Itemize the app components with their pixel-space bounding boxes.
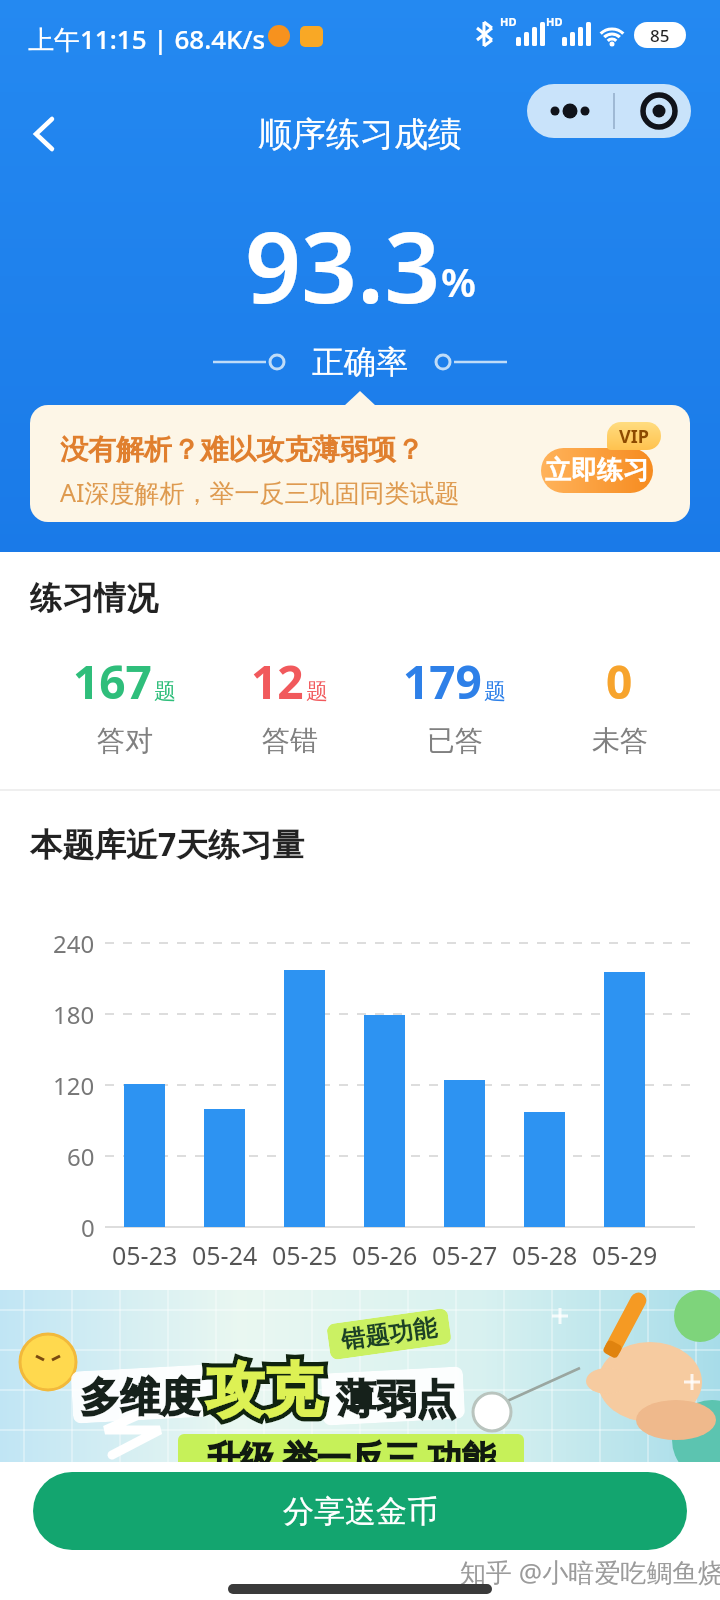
staticText: 85 bbox=[650, 24, 670, 47]
staticText: 攻克 bbox=[206, 1354, 322, 1427]
staticText: 本题库近7天练习量 bbox=[30, 822, 305, 866]
staticText: 05-24 bbox=[192, 1238, 258, 1268]
staticText: 0 bbox=[81, 1211, 95, 1243]
staticText: 未答 bbox=[592, 723, 648, 758]
button[interactable] bbox=[527, 84, 691, 138]
staticText: 已答 bbox=[427, 723, 483, 758]
staticText: 知乎 @小暗爱吃鲷鱼烧 bbox=[460, 1554, 720, 1590]
staticText: 立即练习 bbox=[545, 454, 649, 487]
staticText: 12 bbox=[251, 650, 304, 713]
button[interactable]: 分享送金币 bbox=[33, 1472, 687, 1550]
staticText: 180 bbox=[53, 998, 95, 1030]
staticText: 179 bbox=[403, 650, 482, 713]
staticText: HD bbox=[500, 14, 517, 29]
staticText: 正确率 bbox=[312, 342, 408, 382]
staticText: 05-26 bbox=[352, 1238, 418, 1268]
staticText: 顺序练习成绩 bbox=[258, 113, 462, 156]
staticText: 题 bbox=[484, 678, 506, 706]
staticText: 240 bbox=[53, 927, 95, 959]
staticText: 05-28 bbox=[512, 1238, 578, 1268]
staticText: 05-29 bbox=[592, 1238, 658, 1268]
button[interactable]: 立即练习 bbox=[541, 448, 653, 493]
staticText: 120 bbox=[53, 1069, 95, 1101]
staticText: 05-23 bbox=[112, 1238, 178, 1268]
staticText: % bbox=[441, 254, 476, 308]
staticText: VIP bbox=[619, 424, 649, 449]
staticText: 答对 bbox=[97, 723, 153, 758]
button[interactable] bbox=[18, 108, 70, 160]
staticText: HD bbox=[546, 14, 563, 29]
staticText: 167 bbox=[73, 650, 152, 713]
staticText: 没有解析？难以攻克薄弱项？ bbox=[60, 432, 424, 467]
staticText: 60 bbox=[67, 1140, 95, 1172]
staticText: 多维度 bbox=[80, 1372, 200, 1422]
staticText: 0 bbox=[606, 650, 633, 713]
staticText: 答错 bbox=[262, 723, 318, 758]
staticText: 93.3 bbox=[245, 198, 441, 322]
staticText: AI深度解析，举一反三巩固同类试题 bbox=[60, 475, 460, 509]
staticText: 升级 举一反三 功能 bbox=[206, 1434, 496, 1462]
staticText: 05-27 bbox=[432, 1238, 498, 1268]
staticText: 薄弱点 bbox=[336, 1374, 456, 1424]
staticText: 05-25 bbox=[272, 1238, 338, 1268]
staticText: 上午11:15 | 68.4K/s bbox=[28, 21, 266, 57]
staticText: 错题功能 bbox=[339, 1312, 439, 1356]
staticText: 题 bbox=[306, 678, 328, 706]
staticText: 分享送金币 bbox=[283, 1492, 438, 1531]
button[interactable]: 错题功能 bbox=[0, 1290, 720, 1462]
staticText: 练习情况 bbox=[30, 578, 158, 618]
staticText: 攻克 bbox=[206, 1354, 322, 1427]
staticText: 题 bbox=[154, 678, 176, 706]
